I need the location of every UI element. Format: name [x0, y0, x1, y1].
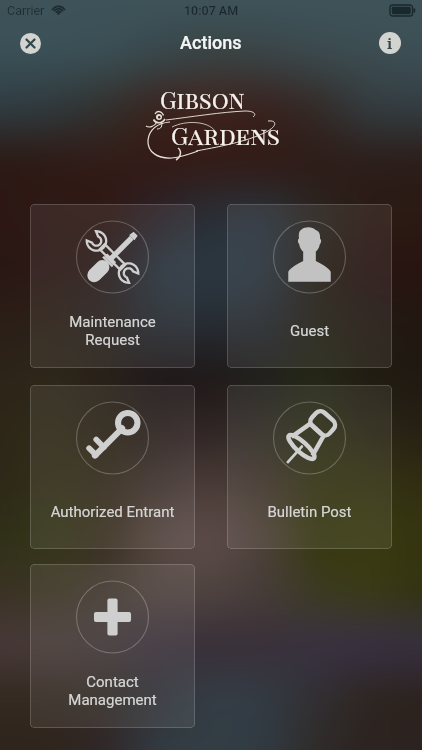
staticText: 10:07 AM: [184, 3, 239, 18]
staticText: i: [387, 33, 393, 53]
button[interactable]: Close: [20, 33, 41, 54]
staticText: Maintenance Request: [30, 313, 195, 349]
staticText: Bulletin Post: [227, 503, 392, 521]
staticText: Contact Management: [30, 673, 195, 709]
staticText: Carrier: [7, 3, 45, 18]
button[interactable]: Guest: [227, 204, 392, 368]
staticText: Gardens: [171, 118, 281, 151]
staticText: Actions: [180, 32, 242, 53]
staticText: Gibson: [160, 84, 245, 115]
button[interactable]: Bulletin Post: [227, 385, 392, 549]
button[interactable]: Authorized Entrant: [30, 385, 195, 549]
staticText: Authorized Entrant: [30, 503, 195, 521]
button[interactable]: Maintenance Request: [30, 204, 195, 368]
staticText: Guest: [227, 322, 392, 340]
button[interactable]: Contact Management: [30, 564, 195, 728]
button[interactable]: Info: [379, 32, 401, 54]
